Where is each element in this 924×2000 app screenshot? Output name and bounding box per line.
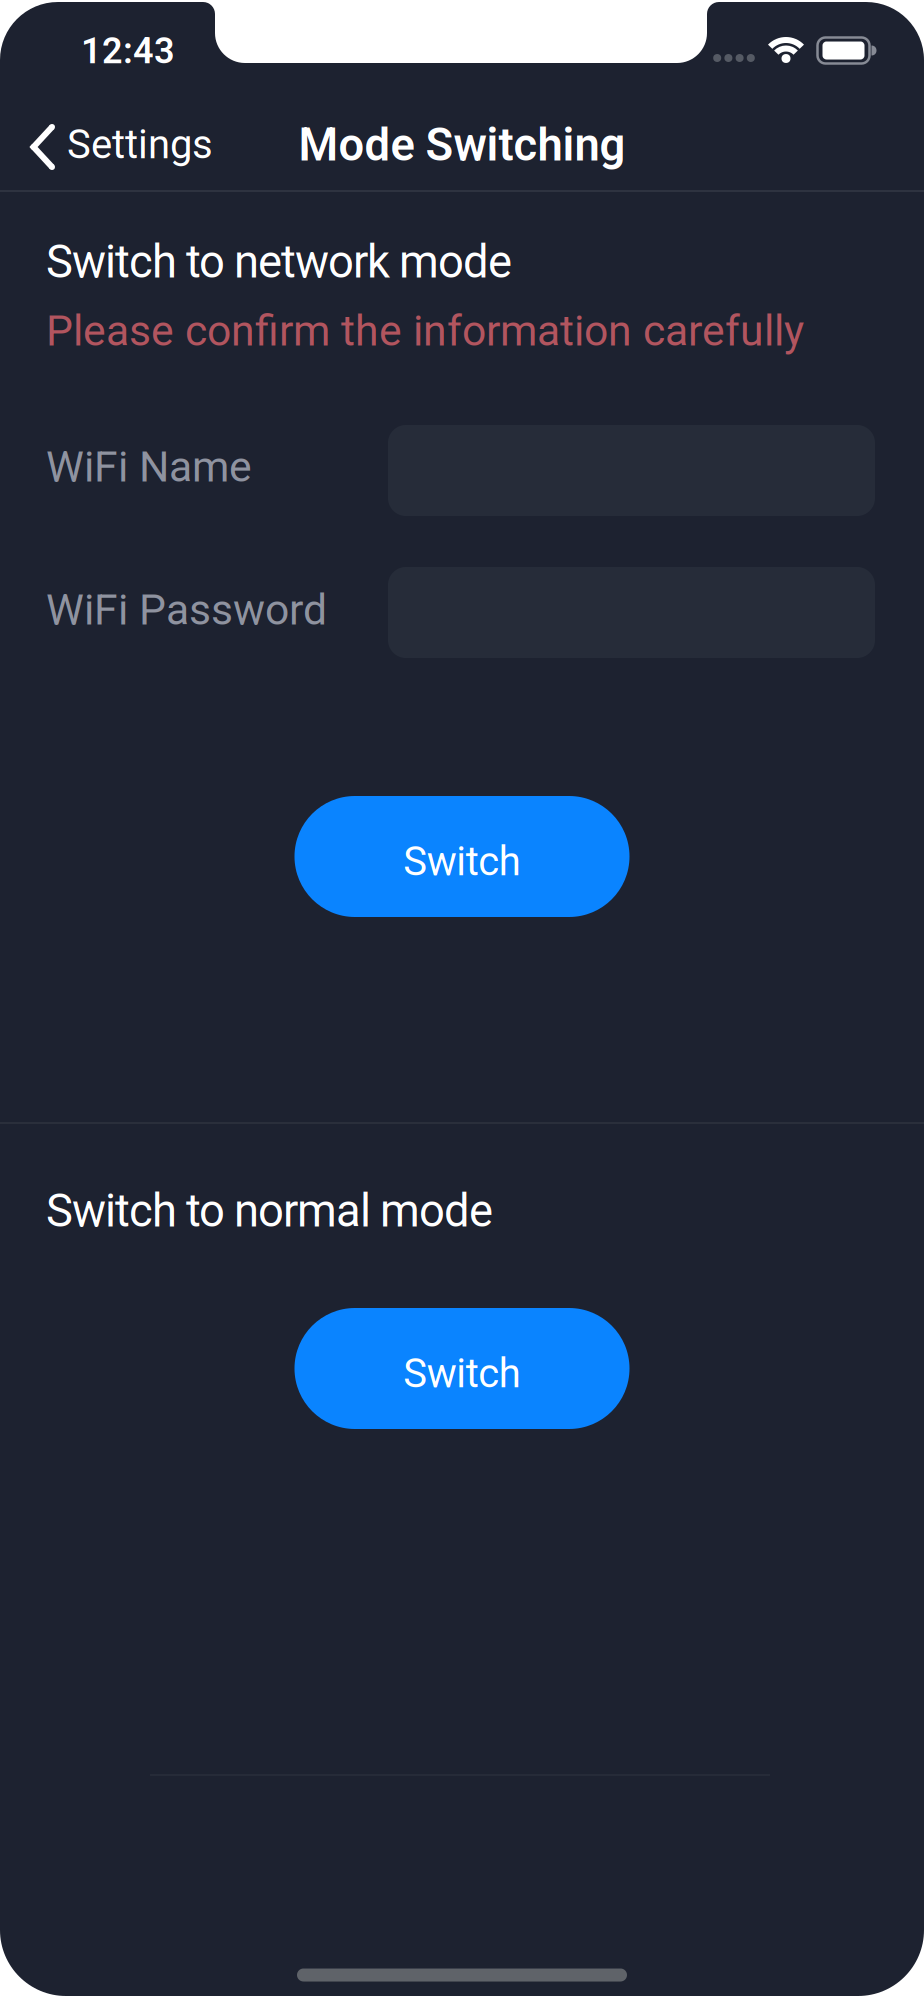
staticText: Switch — [403, 1351, 521, 1396]
button[interactable]: Switch — [294, 1308, 629, 1429]
staticText: WiFi Name — [46, 443, 252, 491]
button[interactable]: Switch — [294, 796, 629, 917]
staticText: Settings — [67, 122, 213, 167]
staticText: 12:43 — [81, 30, 175, 71]
staticText: WiFi Password — [46, 586, 327, 634]
button[interactable]: Settings — [30, 124, 215, 170]
staticText: Mode Switching — [298, 119, 625, 171]
staticText: Switch to normal mode — [46, 1185, 493, 1237]
staticText: Please confirm the information carefully — [46, 307, 804, 355]
staticText: Switch to network mode — [46, 236, 512, 288]
staticText: Switch — [403, 839, 521, 884]
